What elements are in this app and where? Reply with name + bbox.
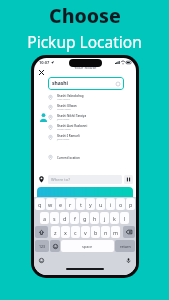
button[interactable]: Delete: [123, 226, 135, 238]
button[interactable]: k: [110, 212, 119, 224]
button[interactable]: Return: [115, 240, 135, 252]
button[interactable]: y: [86, 198, 95, 210]
staticText: m: [113, 229, 119, 236]
staticText: s: [53, 215, 56, 222]
staticText: Kishan Street: [57, 108, 71, 111]
button[interactable]: Dictate: [125, 257, 132, 264]
button[interactable]: s: [50, 212, 59, 224]
button[interactable]: e: [56, 198, 65, 210]
button[interactable]: j: [100, 212, 109, 224]
staticText: q: [38, 201, 42, 208]
staticText: n: [104, 229, 108, 236]
staticText: Where to?: [51, 177, 70, 182]
button[interactable]: q: [35, 198, 45, 210]
staticText: shashi: [52, 80, 69, 87]
button[interactable]: space: [61, 240, 114, 252]
staticText: Choose: [49, 2, 121, 29]
button[interactable]: l: [120, 212, 129, 224]
button[interactable]: Where to?: [48, 175, 122, 184]
button[interactable]: f: [70, 212, 79, 224]
staticText: j: [104, 215, 106, 222]
staticText: p: [129, 201, 133, 208]
staticText: i: [110, 201, 112, 208]
button[interactable]: h: [90, 212, 99, 224]
button[interactable]: g: [80, 212, 89, 224]
button[interactable]: z: [51, 226, 60, 238]
button[interactable]: Numbers: [35, 240, 49, 252]
button[interactable]: Current location: [34, 153, 136, 162]
staticText: Shashi Vakrabchag: [57, 94, 84, 98]
button[interactable]: m: [111, 226, 120, 238]
staticText: Current location: [57, 156, 80, 160]
staticText: l: [124, 215, 126, 222]
staticText: b: [94, 229, 98, 236]
staticText: Kishan Street: [57, 128, 71, 131]
button[interactable]: Pickup location: [37, 175, 46, 184]
staticText: a: [43, 215, 47, 222]
button[interactable]: Emoji: [50, 240, 60, 252]
button[interactable]: c: [71, 226, 80, 238]
button[interactable]: i: [106, 198, 115, 210]
button[interactable]: u: [96, 198, 105, 210]
button[interactable]: Swap locations: [124, 175, 133, 184]
button[interactable]: x: [61, 226, 70, 238]
button[interactable]: [37, 187, 133, 197]
staticText: Shashi I Ramurli: [57, 134, 80, 138]
button[interactable]: Shashi Vakrabchag: [34, 92, 136, 102]
button[interactable]: o: [116, 198, 125, 210]
staticText: z: [54, 229, 57, 236]
staticText: f: [74, 215, 76, 222]
button[interactable]: t: [76, 198, 85, 210]
staticText: v: [84, 229, 87, 236]
button[interactable]: Shashi Nikhil Taraiya: [34, 112, 136, 122]
staticText: r: [69, 201, 72, 208]
staticText: h: [93, 215, 97, 222]
staticText: u: [99, 201, 103, 208]
staticText: return: [120, 244, 131, 249]
staticText: Pickup Location: [27, 31, 142, 52]
staticText: Your Route: [74, 65, 97, 71]
staticText: k: [113, 215, 116, 222]
button[interactable]: n: [101, 226, 110, 238]
button[interactable]: v: [81, 226, 90, 238]
staticText: Jamal Street: [57, 138, 70, 141]
staticText: y: [89, 201, 92, 208]
staticText: c: [74, 229, 77, 236]
staticText: Shashi Ullwan: [57, 104, 77, 108]
button[interactable]: Shift: [35, 226, 48, 238]
button[interactable]: p: [126, 198, 135, 210]
button[interactable]: Shashi I Ramurli: [34, 132, 136, 142]
button[interactable]: b: [91, 226, 100, 238]
button[interactable]: Emoji: [38, 257, 45, 264]
staticText: Near Airport: [57, 98, 70, 101]
button[interactable]: d: [60, 212, 69, 224]
staticText: d: [63, 215, 67, 222]
button[interactable]: shashi: [48, 77, 124, 90]
staticText: 123: [39, 244, 46, 249]
staticText: Shashi Nikhil Taraiya: [57, 114, 87, 118]
staticText: w: [48, 201, 53, 208]
staticText: x: [64, 229, 67, 236]
staticText: Jamal Street: [57, 118, 70, 121]
staticText: g: [83, 215, 87, 222]
staticText: t: [80, 201, 82, 208]
button[interactable]: r: [66, 198, 75, 210]
staticText: o: [119, 201, 123, 208]
button[interactable]: Shashi Ullwan: [34, 102, 136, 112]
button[interactable]: w: [46, 198, 55, 210]
staticText: e: [59, 201, 63, 208]
staticText: Shashi Auni Ruzbanni: [57, 124, 88, 128]
button[interactable]: Shashi Auni Ruzbanni: [34, 122, 136, 132]
staticText: 10:07: [39, 60, 50, 65]
button[interactable]: Close: [37, 68, 45, 76]
button[interactable]: a: [40, 212, 49, 224]
staticText: space: [82, 244, 93, 249]
